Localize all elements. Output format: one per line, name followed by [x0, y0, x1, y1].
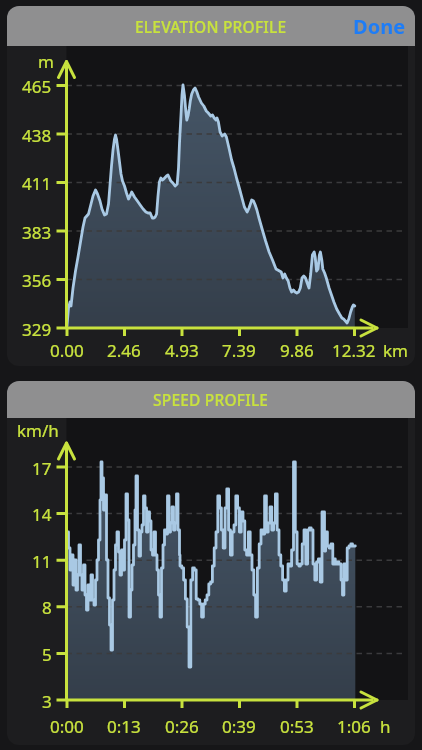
staticText: 0:13	[107, 715, 141, 733]
staticText: 9.86	[280, 339, 314, 357]
staticText: Done	[353, 13, 406, 40]
button[interactable]: Done	[349, 9, 410, 44]
staticText: 7.39	[222, 339, 256, 357]
staticText: 8	[42, 596, 52, 616]
staticText: 4.93	[165, 339, 199, 357]
staticText: 5	[42, 643, 52, 663]
staticText: 3	[42, 690, 52, 710]
staticText: 0:39	[222, 715, 256, 733]
staticText: 411	[22, 172, 52, 192]
staticText: ELEVATION PROFILE	[135, 16, 287, 37]
staticText: 11	[32, 550, 52, 570]
staticText: m	[38, 50, 54, 68]
staticText: 465	[22, 75, 52, 95]
staticText: 14	[32, 503, 52, 523]
staticText: 356	[22, 269, 52, 289]
staticText: 0:00	[50, 715, 84, 733]
staticText: 17	[32, 457, 52, 477]
staticText: h	[380, 715, 391, 733]
staticText: 0:26	[165, 715, 199, 733]
staticText: 329	[22, 318, 52, 338]
staticText: 0.00	[50, 339, 84, 357]
staticText: SPEED PROFILE	[153, 389, 269, 410]
staticText: km/h	[17, 419, 59, 437]
staticText: 2.46	[107, 339, 141, 357]
staticText: km	[383, 339, 408, 357]
staticText: 0:53	[280, 715, 314, 733]
staticText: 438	[22, 124, 52, 144]
staticText: 383	[22, 221, 52, 241]
staticText: 1:06	[337, 715, 371, 733]
staticText: 12.32	[332, 339, 376, 357]
